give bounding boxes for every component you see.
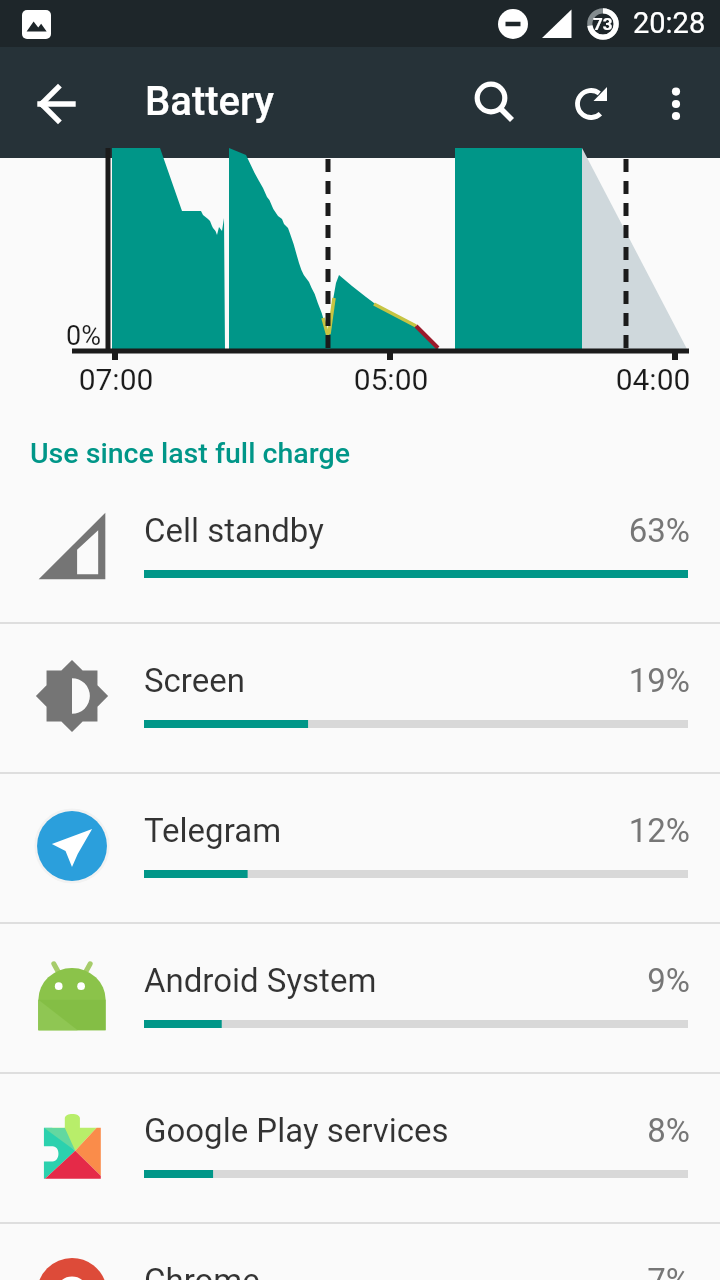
staticText: 73	[593, 14, 613, 34]
staticText: Use since last full charge	[30, 437, 350, 470]
staticText: 0%	[0, 320, 101, 352]
staticText: 07:00	[36, 362, 196, 397]
button[interactable]: Cell standby	[0, 474, 720, 622]
staticText: Google Play services	[144, 1111, 449, 1150]
button[interactable]: Refresh	[544, 47, 640, 158]
staticText: 63%	[0, 511, 690, 550]
button[interactable]: More options	[636, 47, 720, 158]
staticText: 8%	[0, 1111, 690, 1150]
staticText: Chrome	[144, 1261, 260, 1280]
staticText: Battery	[145, 78, 274, 125]
button[interactable]: Android System	[0, 924, 720, 1072]
staticText: 12%	[0, 811, 690, 850]
staticText: 9%	[0, 961, 690, 1000]
staticText: Android System	[144, 961, 377, 1000]
staticText: Telegram	[144, 811, 282, 850]
button[interactable]: Telegram	[0, 774, 720, 922]
staticText: Cell standby	[144, 511, 324, 550]
button[interactable]: Chrome	[0, 1224, 720, 1280]
staticText: 20:28	[633, 6, 706, 40]
staticText: 04:00	[573, 362, 720, 397]
button[interactable]: Google Play services	[0, 1074, 720, 1222]
button[interactable]: Screen	[0, 624, 720, 772]
button[interactable]: Search	[443, 47, 539, 158]
staticText: Screen	[144, 661, 245, 700]
staticText: 19%	[0, 661, 690, 700]
staticText: 05:00	[311, 362, 471, 397]
staticText: 7%	[0, 1261, 690, 1280]
button[interactable]: Back	[0, 47, 112, 158]
